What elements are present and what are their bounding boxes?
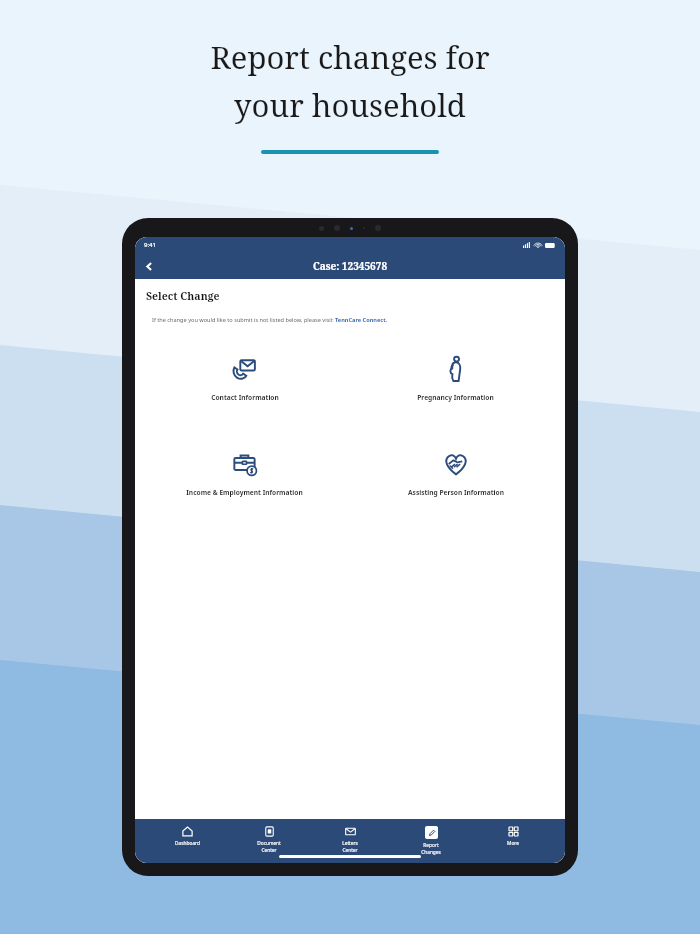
staticText: Report changes for	[210, 36, 490, 78]
staticText: Center	[342, 847, 358, 854]
staticText: Center	[261, 847, 277, 854]
staticText: TennCare Connect.	[335, 316, 388, 324]
staticText: 9:41	[144, 241, 156, 249]
button[interactable]: Letters	[321, 824, 379, 856]
button[interactable]: Income & Employment Information	[144, 432, 345, 517]
button[interactable]: Assisting Person Information	[355, 432, 556, 517]
staticText: If the change you would like to submit i…	[152, 316, 335, 324]
button[interactable]: Report	[402, 824, 460, 858]
button[interactable]: Dashboard	[158, 824, 216, 849]
staticText: Assisting Person Information	[408, 488, 504, 497]
button[interactable]: More	[484, 824, 542, 849]
staticText: Income & Employment Information	[186, 488, 303, 497]
staticText: Letters	[342, 840, 358, 847]
staticText: your household	[234, 84, 466, 126]
staticText: Changes	[421, 849, 441, 856]
staticText: Dashboard	[175, 840, 200, 847]
staticText: Pregnancy Information	[417, 393, 494, 402]
staticText: Select Change	[146, 289, 220, 303]
staticText: More	[507, 840, 519, 847]
button[interactable]: TennCare Connect.	[335, 316, 388, 324]
button[interactable]: Pregnancy Information	[355, 337, 556, 422]
staticText: Report	[423, 842, 439, 849]
staticText: Document	[257, 840, 281, 847]
button[interactable]: Contact Information	[144, 337, 345, 422]
staticText: Case: 12345678	[313, 259, 388, 273]
staticText: Contact Information	[211, 393, 279, 402]
button[interactable]: Document	[240, 824, 298, 856]
button[interactable]: Back	[139, 256, 159, 276]
